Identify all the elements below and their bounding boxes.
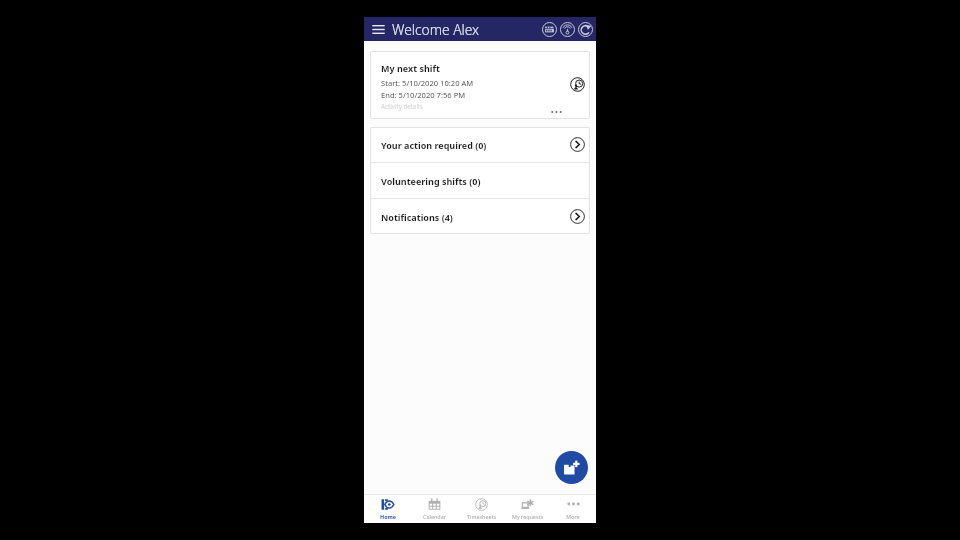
button[interactable]: More — [550, 494, 596, 523]
staticText: Your action required (0) — [381, 139, 487, 151]
staticText: Timesheets — [467, 513, 496, 520]
button[interactable]: Clock in — [558, 20, 576, 38]
button[interactable]: Menu — [371, 22, 385, 36]
button[interactable]: Add shift — [555, 451, 588, 484]
staticText: Volunteering shifts (0) — [381, 175, 481, 187]
button[interactable]: More options — [551, 109, 562, 115]
staticText: More — [566, 513, 580, 520]
staticText: My requests — [512, 513, 543, 520]
staticText: Welcome Alex — [392, 20, 480, 39]
button[interactable]: Home — [364, 494, 411, 523]
button[interactable]: Refresh — [576, 20, 594, 38]
staticText: My next shift — [381, 62, 440, 74]
staticText: Home — [380, 513, 396, 520]
staticText: End: 5/10/2020 7:56 PM — [381, 90, 466, 100]
staticText: Start: 5/10/2020 10:20 AM — [381, 78, 474, 88]
button[interactable]: My requests — [504, 494, 550, 523]
button[interactable]: Calendar — [411, 494, 458, 523]
staticText: Notifications (4) — [381, 211, 453, 223]
button[interactable]: Shift activity — [569, 76, 585, 92]
button[interactable]: Volunteering shifts (0) — [370, 163, 590, 198]
button[interactable]: Notifications (4) — [370, 199, 590, 234]
staticText: Calendar — [423, 513, 446, 520]
staticText: Activity details — [381, 102, 423, 110]
button[interactable]: Your action required (0) — [370, 127, 590, 162]
button[interactable]: Timesheets — [458, 494, 504, 523]
button[interactable]: Payslips — [540, 20, 558, 38]
button[interactable]: My next shift — [370, 51, 590, 119]
